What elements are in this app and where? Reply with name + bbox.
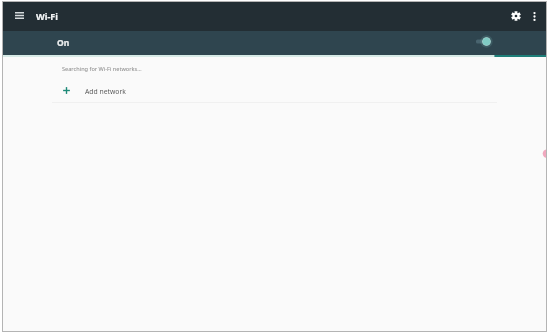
button[interactable]: Searching for Wi-Fi networks… bbox=[3, 62, 546, 76]
staticText: Wi-Fi bbox=[36, 10, 58, 22]
staticText: On bbox=[57, 37, 70, 49]
button[interactable]: Add network bbox=[3, 79, 546, 102]
button[interactable]: On bbox=[3, 31, 546, 55]
button[interactable]: Open navigation drawer bbox=[9, 5, 29, 25]
button[interactable]: Add bbox=[542, 148, 546, 159]
staticText: Searching for Wi-Fi networks… bbox=[62, 65, 142, 73]
button[interactable]: Settings bbox=[506, 6, 526, 26]
staticText: Add network bbox=[85, 87, 126, 96]
button[interactable]: More options bbox=[524, 6, 544, 26]
